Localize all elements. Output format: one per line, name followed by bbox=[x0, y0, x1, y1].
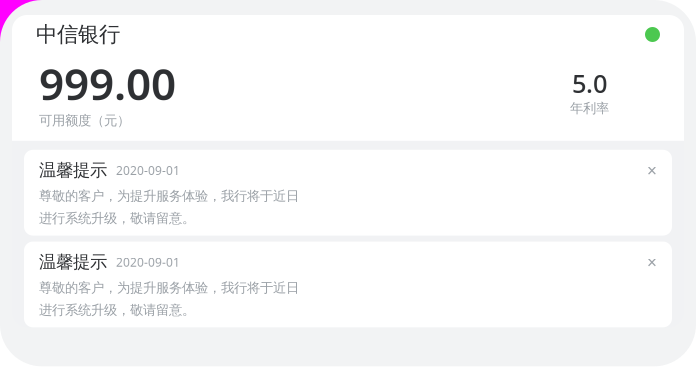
staticText: 999.00 bbox=[39, 54, 176, 112]
staticText: 可用额度（元） bbox=[39, 112, 130, 129]
staticText: 2020-09-01 bbox=[116, 162, 180, 178]
staticText: × bbox=[647, 159, 657, 182]
staticText: 温馨提示 bbox=[39, 251, 107, 273]
staticText: 2020-09-01 bbox=[116, 254, 180, 270]
staticText: 进行系统升级，敬请留意。 bbox=[39, 210, 195, 227]
staticText: 5.0 bbox=[572, 66, 607, 100]
staticText: 年利率 bbox=[570, 100, 609, 116]
staticText: 中信银行 bbox=[36, 21, 120, 48]
staticText: 尊敬的客户，为提升服务体验，我行将于近日 bbox=[39, 188, 299, 204]
staticText: × bbox=[647, 251, 657, 274]
staticText: 温馨提示 bbox=[39, 160, 107, 181]
staticText: 尊敬的客户，为提升服务体验，我行将于近日 bbox=[39, 280, 299, 296]
staticText: 进行系统升级，敬请留意。 bbox=[39, 302, 195, 318]
